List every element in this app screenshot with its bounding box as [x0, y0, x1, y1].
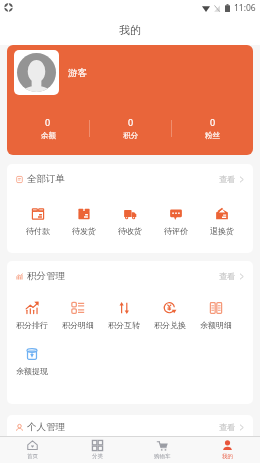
staticText: 余额明细: [200, 320, 232, 330]
button[interactable]: 0: [172, 116, 253, 140]
staticText: 余额: [41, 131, 56, 140]
staticText: 积分兑换: [154, 320, 186, 330]
staticText: 积分管理: [27, 270, 65, 282]
staticText: 游客: [68, 67, 87, 79]
staticText: 退换货: [210, 226, 234, 236]
staticText: 积分: [123, 131, 138, 140]
button[interactable]: 0: [90, 116, 171, 140]
button[interactable]: 游客: [14, 50, 87, 95]
button[interactable]: 积分排行: [9, 301, 55, 330]
staticText: 0: [128, 116, 134, 128]
button[interactable]: 全部订单: [7, 168, 253, 190]
staticText: 分类: [92, 453, 103, 460]
staticText: 待评价: [164, 226, 188, 236]
staticText: 待发货: [72, 226, 96, 236]
button[interactable]: 待收货: [107, 207, 153, 236]
button[interactable]: 待评价: [153, 207, 199, 236]
button[interactable]: 首页: [0, 437, 65, 463]
staticText: 首页: [27, 453, 38, 460]
button[interactable]: 待付款: [15, 207, 61, 236]
staticText: 积分排行: [16, 320, 48, 330]
button[interactable]: 我的: [195, 437, 260, 463]
button[interactable]: 0: [7, 116, 89, 140]
button[interactable]: 个人管理: [7, 416, 253, 438]
staticText: 积分互转: [108, 320, 140, 330]
staticText: 全部订单: [27, 173, 65, 185]
button[interactable]: 购物车: [130, 437, 195, 463]
button[interactable]: 退换货: [199, 207, 245, 236]
button[interactable]: 待发货: [61, 207, 107, 236]
staticText: 粉丝: [205, 131, 220, 140]
staticText: 待付款: [26, 226, 50, 236]
staticText: 积分明细: [62, 320, 94, 330]
staticText: 我的: [119, 23, 141, 37]
button[interactable]: 积分互转: [101, 301, 147, 330]
button[interactable]: 积分管理: [7, 265, 253, 287]
staticText: 11:06: [234, 2, 256, 14]
staticText: 0: [45, 116, 51, 128]
staticText: 查看: [219, 174, 235, 184]
button[interactable]: 分类: [65, 437, 130, 463]
button[interactable]: 积分明细: [55, 301, 101, 330]
staticText: 0: [210, 116, 216, 128]
staticText: 待收货: [118, 226, 142, 236]
button[interactable]: 余额提现: [9, 347, 55, 376]
staticText: 查看: [219, 422, 235, 432]
button[interactable]: 余额明细: [193, 301, 239, 330]
staticText: 个人管理: [27, 421, 65, 433]
staticText: 查看: [219, 271, 235, 281]
staticText: 购物车: [154, 453, 171, 460]
staticText: 我的: [222, 453, 233, 460]
button[interactable]: 积分兑换: [147, 301, 193, 330]
staticText: 余额提现: [16, 366, 48, 376]
